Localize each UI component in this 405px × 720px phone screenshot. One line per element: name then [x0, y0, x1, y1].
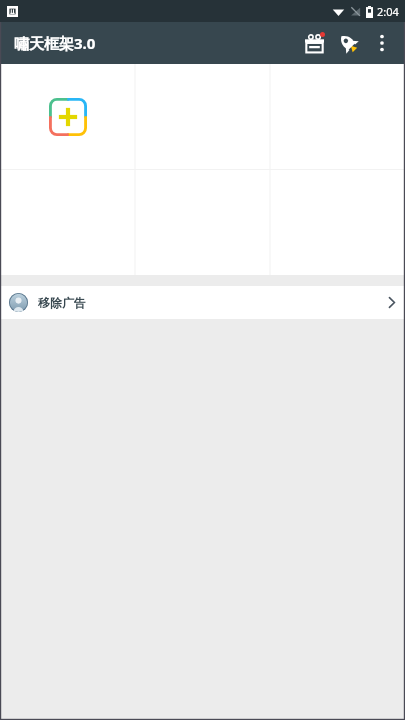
- button[interactable]: Gifts: [297, 26, 331, 60]
- button[interactable]: Boost: [331, 26, 365, 60]
- staticText: 嘯天框架3.0: [14, 33, 96, 53]
- button[interactable]: Add: [0, 64, 135, 170]
- button[interactable]: More options: [365, 26, 399, 60]
- staticText: 移除广告: [38, 295, 86, 310]
- staticText: 2:04: [377, 4, 399, 19]
- button[interactable]: 移除广告: [0, 286, 405, 319]
